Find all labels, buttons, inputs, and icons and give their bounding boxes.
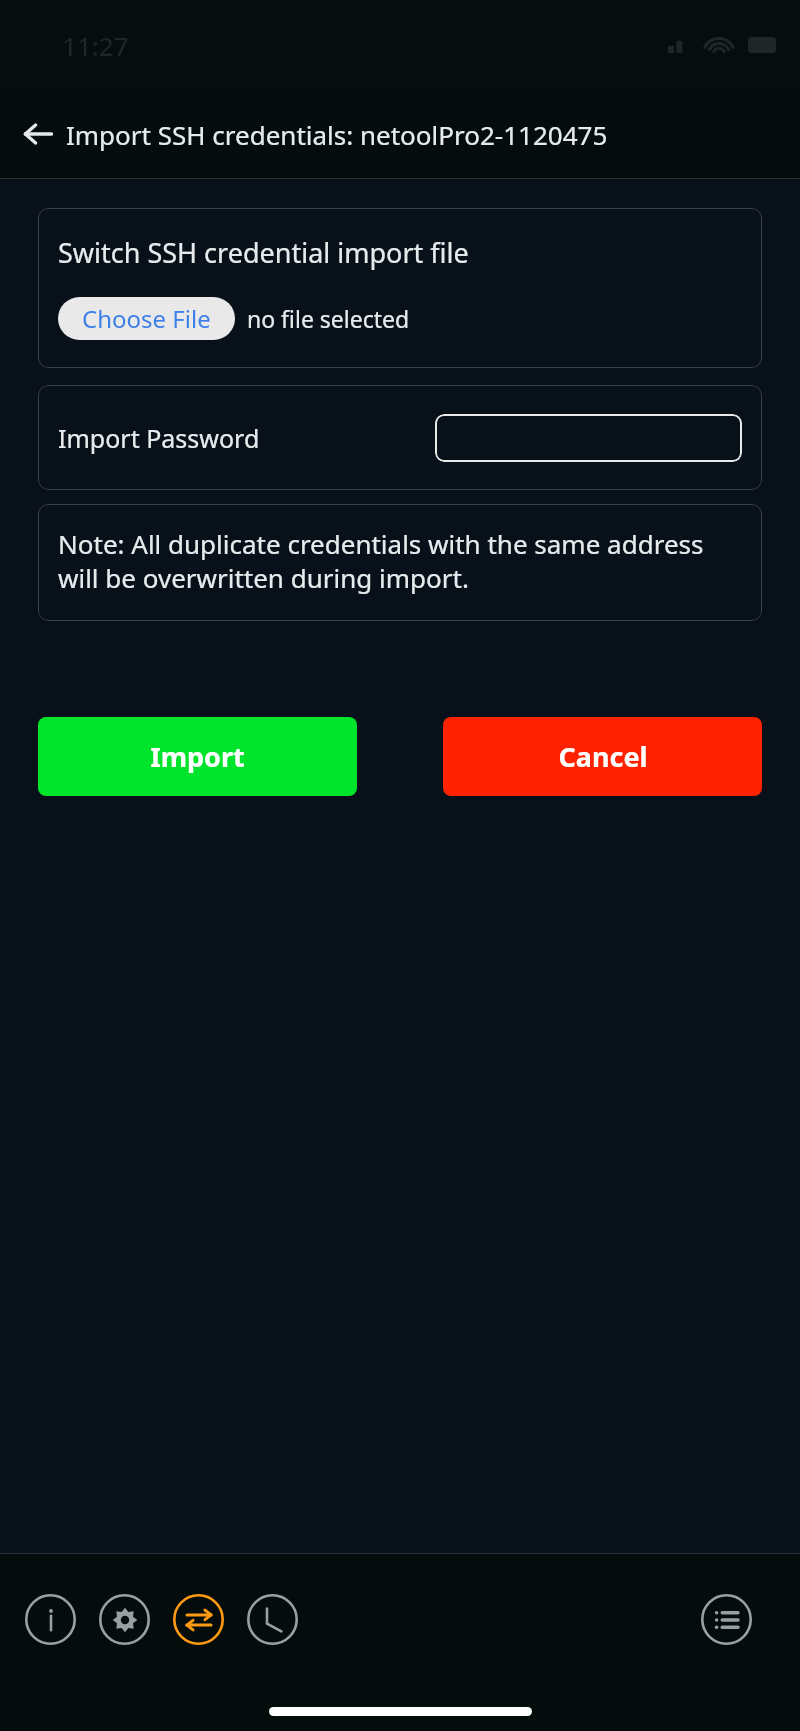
staticText: no file selected — [247, 303, 410, 334]
staticText: 11:27 — [62, 28, 129, 63]
button[interactable]: History — [235, 1582, 309, 1656]
staticText: Cancel — [558, 738, 648, 775]
staticText: Import SSH credentials: netoolPro2-11204… — [66, 117, 608, 152]
staticText: Switch SSH credential import file — [58, 234, 469, 271]
staticText: Import Password — [58, 421, 260, 455]
button[interactable]: List — [689, 1582, 763, 1656]
button[interactable] — [435, 414, 742, 462]
button[interactable]: Transfer — [161, 1582, 235, 1656]
button[interactable]: Settings — [87, 1582, 161, 1656]
staticText: Import — [150, 738, 245, 775]
button[interactable]: Info — [13, 1582, 87, 1656]
button[interactable]: Import — [38, 717, 357, 796]
button[interactable]: Back — [10, 106, 66, 162]
button[interactable]: Cancel — [443, 717, 762, 796]
staticText: Note: All duplicate credentials with the… — [58, 526, 738, 595]
staticText: Choose File — [82, 302, 211, 335]
button[interactable]: Choose File — [58, 297, 235, 340]
